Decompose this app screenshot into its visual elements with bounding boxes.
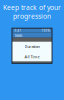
- staticText: Stats: [14, 33, 22, 38]
- staticText: All Time: [24, 54, 39, 59]
- staticText: 100%: [41, 29, 49, 32]
- staticText: Duration: [24, 44, 39, 49]
- staticText: progression: [13, 12, 51, 21]
- staticText: 9:41: [14, 29, 21, 32]
- staticText: Keep track of your: [3, 3, 61, 12]
